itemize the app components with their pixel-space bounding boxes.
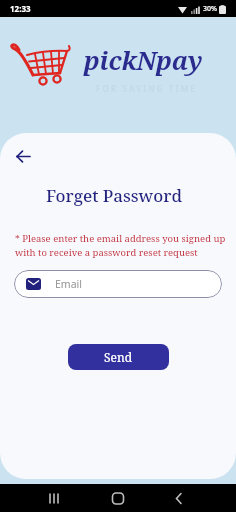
staticText: Send [104, 349, 133, 365]
button[interactable]: Email [14, 270, 222, 298]
staticText: FOR SAVING TIME [96, 83, 197, 94]
staticText: Email [55, 277, 82, 291]
button[interactable] [107, 487, 129, 509]
button[interactable] [44, 487, 66, 509]
staticText: pickNpay [84, 43, 203, 77]
staticText: 30% [203, 4, 217, 14]
button[interactable]: Send [68, 344, 169, 370]
button[interactable] [14, 148, 34, 168]
button[interactable] [168, 487, 190, 509]
staticText: Forget Password [0, 184, 228, 207]
staticText: * Please enter the email address you sig… [15, 232, 226, 258]
staticText: 12:33 [10, 3, 31, 14]
